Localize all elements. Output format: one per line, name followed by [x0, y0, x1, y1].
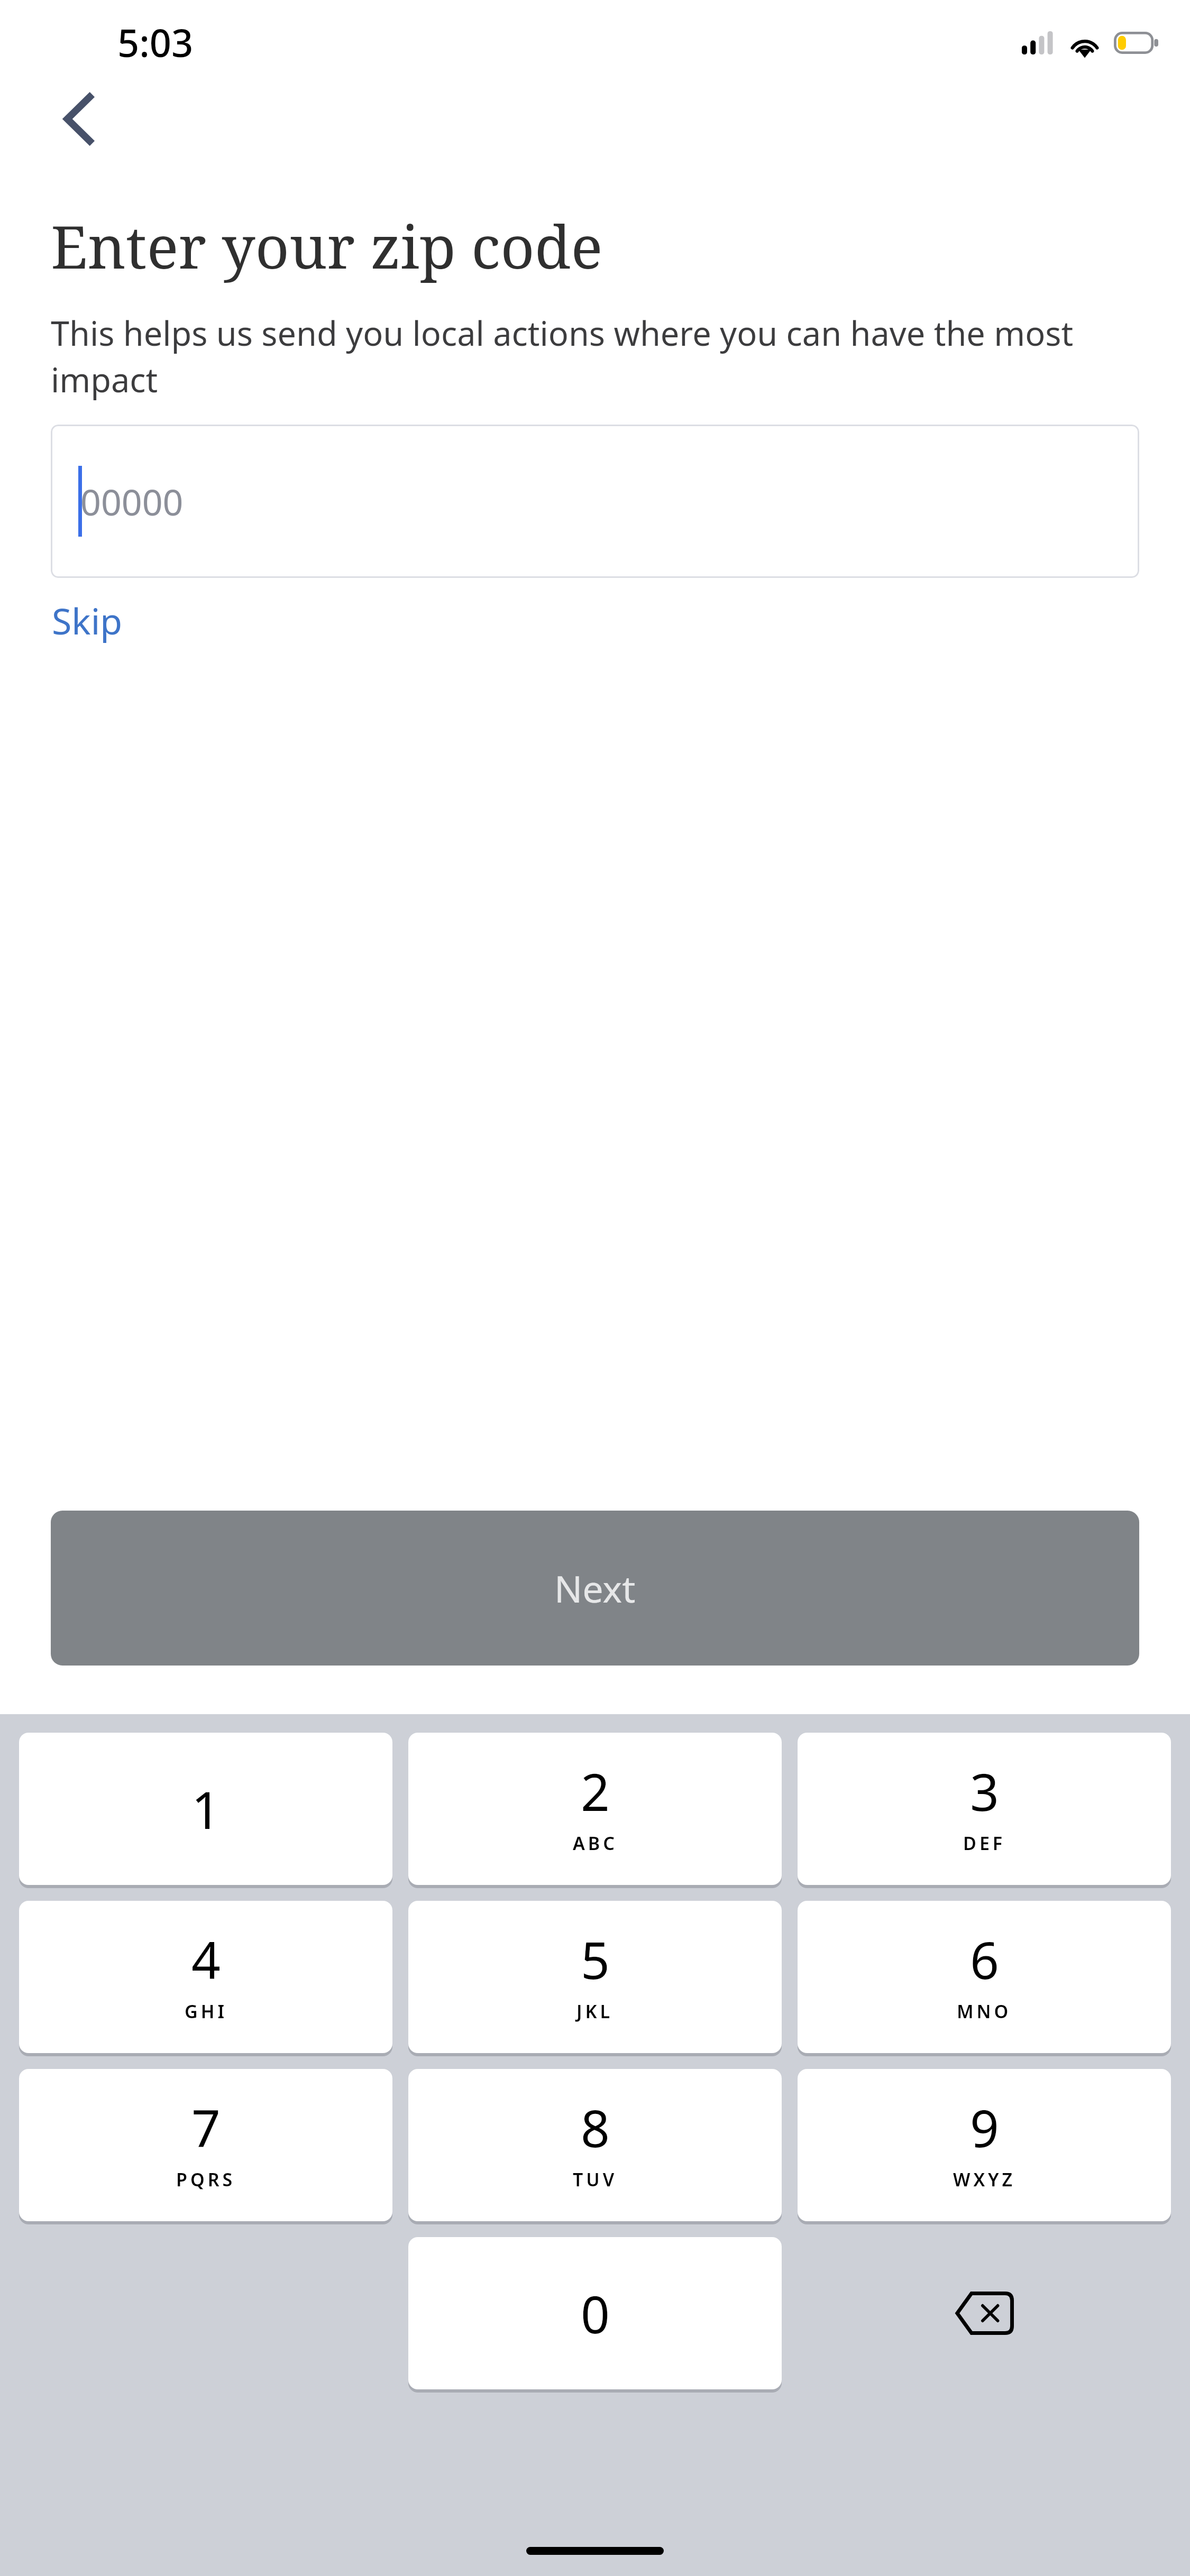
staticText: 3 [970, 1756, 999, 1826]
button[interactable]: 0 [408, 2237, 782, 2389]
button[interactable]: Backspace [798, 2237, 1171, 2389]
staticText: 8 [581, 2093, 610, 2162]
button[interactable]: 8 [408, 2069, 782, 2221]
button[interactable]: Back [33, 74, 126, 164]
staticText: Next [554, 1563, 636, 1613]
staticText: GHI [185, 1999, 227, 2023]
staticText: 9 [970, 2093, 999, 2162]
staticText: WXYZ [953, 2167, 1016, 2192]
staticText: 2 [581, 1756, 610, 1826]
staticText: 7 [191, 2093, 221, 2162]
button[interactable]: Next [51, 1511, 1139, 1666]
staticText: 00000 [80, 477, 184, 526]
button[interactable]: 9 [798, 2069, 1171, 2221]
button[interactable]: Skip [47, 592, 128, 649]
button[interactable]: 2 [408, 1733, 782, 1885]
button[interactable]: 1 [19, 1733, 392, 1885]
staticText: 5 [581, 1925, 610, 1994]
staticText: TUV [573, 2167, 618, 2192]
button[interactable]: 3 [798, 1733, 1171, 1885]
staticText: 5:03 [117, 16, 194, 68]
staticText: JKL [576, 1999, 614, 2023]
staticText: 4 [191, 1925, 221, 1994]
staticText: 6 [970, 1925, 999, 1994]
staticText: DEF [963, 1831, 1006, 1855]
staticText: This helps us send you local actions whe… [51, 310, 1105, 402]
staticText: ABC [573, 1831, 618, 1855]
staticText: 0 [581, 2279, 610, 2348]
staticText: Enter your zip code [51, 205, 603, 286]
button[interactable]: 00000 [51, 425, 1139, 578]
staticText: 1 [191, 1774, 221, 1844]
button[interactable]: 5 [408, 1901, 782, 2053]
staticText: PQRS [176, 2167, 236, 2192]
staticText: Skip [52, 596, 123, 645]
staticText: MNO [957, 1999, 1012, 2023]
button[interactable]: 4 [19, 1901, 392, 2053]
button[interactable]: 6 [798, 1901, 1171, 2053]
button[interactable]: 7 [19, 2069, 392, 2221]
